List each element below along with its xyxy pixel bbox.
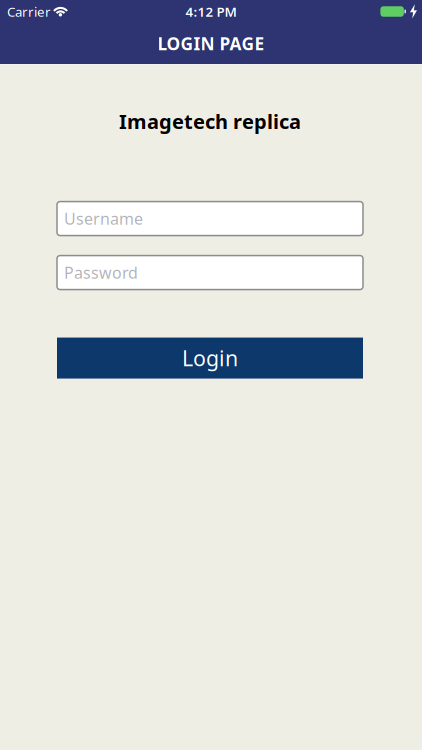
staticText: Imagetech replica <box>119 108 301 135</box>
staticText: Password <box>64 262 138 283</box>
staticText: Username <box>64 208 143 229</box>
staticText: LOGIN PAGE <box>157 32 264 55</box>
staticText: 4:12 PM <box>185 3 236 20</box>
staticText: Login <box>182 344 238 372</box>
button[interactable]: Username text field <box>57 202 363 236</box>
staticText: Carrier <box>7 3 51 20</box>
button[interactable]: Login <box>57 338 363 379</box>
button[interactable]: Password text field <box>57 256 363 290</box>
